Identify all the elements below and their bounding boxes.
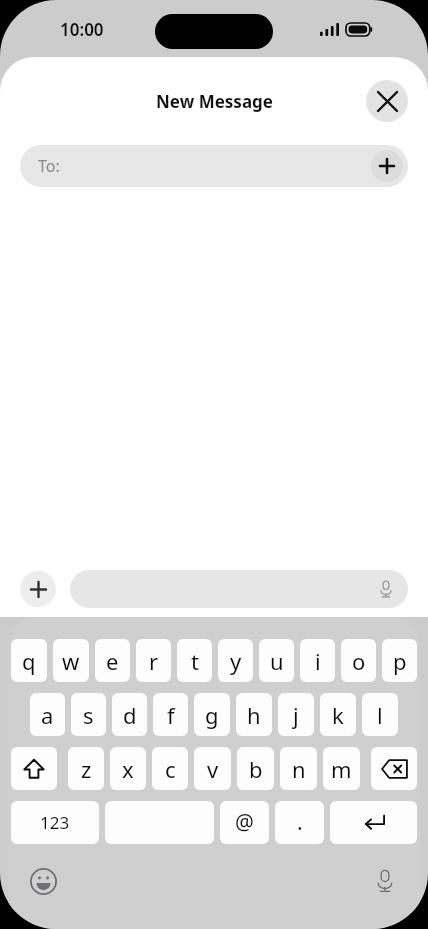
staticText: h	[247, 700, 261, 730]
button[interactable]: b	[237, 747, 274, 790]
button[interactable]: Close	[366, 80, 408, 122]
button[interactable]: l	[362, 693, 398, 736]
staticText: e	[106, 646, 119, 676]
button[interactable]: Dictate	[70, 570, 408, 608]
staticText: s	[83, 700, 94, 730]
button[interactable]: w	[53, 639, 89, 682]
staticText: m	[331, 754, 352, 784]
staticText: d	[123, 700, 137, 730]
button[interactable]: Add contact	[371, 150, 403, 182]
button[interactable]: Space	[105, 801, 214, 844]
staticText: To:	[38, 155, 60, 177]
button[interactable]: Emoji	[26, 864, 60, 898]
button[interactable]: a	[30, 693, 65, 736]
button[interactable]: @	[220, 801, 269, 844]
button[interactable]: p	[382, 639, 417, 682]
button[interactable]: h	[236, 693, 272, 736]
button[interactable]: Return	[330, 801, 417, 844]
button[interactable]: o	[341, 639, 376, 682]
staticText: j	[293, 700, 299, 730]
staticText: f	[167, 700, 175, 730]
staticText: 10:00	[60, 18, 104, 41]
staticText: x	[122, 754, 134, 784]
staticText: a	[41, 700, 54, 730]
button[interactable]: e	[95, 639, 130, 682]
button[interactable]: m	[323, 747, 360, 790]
button[interactable]: g	[194, 693, 230, 736]
staticText: g	[205, 700, 219, 730]
staticText: k	[332, 700, 344, 730]
staticText: t	[191, 646, 199, 676]
button[interactable]: d	[112, 693, 147, 736]
button[interactable]: n	[280, 747, 317, 790]
staticText: w	[62, 646, 80, 676]
button[interactable]: 123	[11, 801, 99, 844]
button[interactable]: y	[218, 639, 253, 682]
staticText: l	[377, 700, 383, 730]
staticText: i	[315, 646, 321, 676]
staticText: New Message	[156, 90, 273, 113]
button[interactable]: q	[11, 639, 47, 682]
staticText: p	[393, 646, 407, 676]
button[interactable]: Backspace	[371, 747, 417, 790]
other: Dictate	[376, 579, 396, 599]
staticText: b	[249, 754, 263, 784]
staticText: c	[165, 754, 176, 784]
staticText: n	[292, 754, 306, 784]
staticText: u	[270, 646, 284, 676]
staticText: o	[352, 646, 366, 676]
button[interactable]: v	[194, 747, 231, 790]
staticText: q	[22, 646, 36, 676]
staticText: y	[230, 646, 242, 676]
button[interactable]: .	[275, 801, 324, 844]
button[interactable]: Add attachment	[20, 571, 56, 607]
button[interactable]: To:	[20, 145, 408, 187]
button[interactable]: k	[320, 693, 356, 736]
button[interactable]: i	[300, 639, 335, 682]
staticText: .	[297, 808, 303, 837]
staticText: r	[149, 646, 159, 676]
button[interactable]: Dictation	[368, 864, 402, 898]
button[interactable]: t	[177, 639, 212, 682]
button[interactable]: x	[110, 747, 146, 790]
button[interactable]: Shift	[11, 747, 57, 790]
button[interactable]: j	[278, 693, 314, 736]
staticText: v	[207, 754, 219, 784]
button[interactable]: f	[153, 693, 188, 736]
staticText: @	[235, 808, 254, 837]
button[interactable]: c	[152, 747, 188, 790]
staticText: 123	[40, 811, 70, 834]
button[interactable]: z	[68, 747, 104, 790]
button[interactable]: u	[259, 639, 294, 682]
button[interactable]: r	[136, 639, 171, 682]
staticText: z	[81, 754, 92, 784]
button[interactable]: s	[71, 693, 106, 736]
